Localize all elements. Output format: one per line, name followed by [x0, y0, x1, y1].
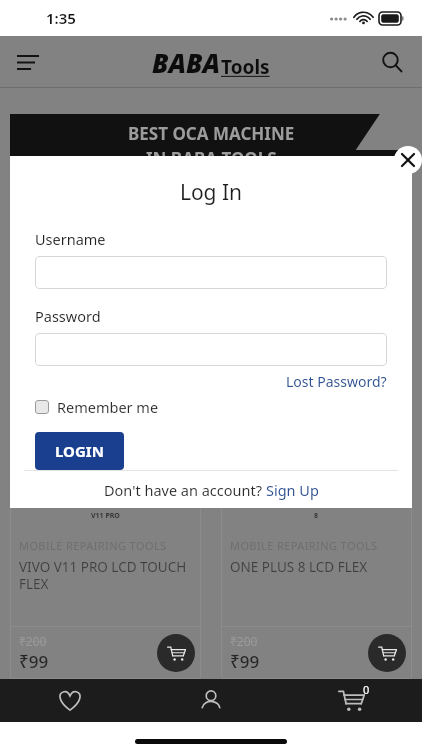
button[interactable]: Account	[140, 679, 281, 722]
staticText: Log In	[10, 178, 412, 207]
button[interactable]: 8	[221, 504, 412, 679]
button[interactable]: Cart	[281, 679, 422, 722]
button[interactable]: Sign Up	[266, 480, 319, 500]
button[interactable]: Remember me	[35, 397, 159, 417]
staticText: ₹200	[230, 633, 258, 649]
button[interactable]: Menu	[8, 42, 48, 82]
staticText: V11 PRO	[91, 511, 120, 521]
staticText: 0	[363, 682, 370, 697]
staticText: 1:35	[46, 8, 76, 28]
staticText: ₹99	[230, 650, 260, 673]
staticText: MOBILE REPAIRING TOOLS	[19, 538, 167, 553]
button[interactable]: Lost Password?	[286, 372, 387, 391]
staticText: BEST OCA MACHINE	[128, 122, 295, 145]
button[interactable]	[35, 256, 387, 289]
staticText: BABA	[152, 45, 221, 80]
staticText: LOGIN	[55, 441, 104, 461]
button[interactable]: Search	[372, 42, 412, 82]
staticText: ₹200	[19, 633, 47, 649]
button[interactable]: Close	[394, 146, 422, 174]
staticText: Remember me	[57, 397, 159, 417]
staticText: MOBILE REPAIRING TOOLS	[230, 538, 378, 553]
button[interactable]	[35, 333, 387, 366]
staticText: VIVO V11 PRO LCD TOUCH FLEX	[19, 558, 192, 593]
staticText: Password	[35, 306, 101, 326]
staticText: Tools	[221, 54, 270, 80]
button[interactable]: V11 PRO	[10, 504, 201, 679]
staticText: ₹99	[19, 650, 49, 673]
button[interactable]: Wishlist	[0, 679, 140, 722]
staticText: 8	[314, 511, 319, 521]
staticText: Username	[35, 229, 106, 249]
staticText: Don't have an account?	[104, 480, 266, 500]
staticText: IN BABA TOOLS	[146, 147, 277, 170]
button[interactable]: Add to cart	[157, 634, 195, 672]
button[interactable]: LOGIN	[35, 432, 124, 470]
button[interactable]: Add to cart	[368, 634, 406, 672]
staticText: ONE PLUS 8 LCD FLEX	[230, 558, 368, 576]
